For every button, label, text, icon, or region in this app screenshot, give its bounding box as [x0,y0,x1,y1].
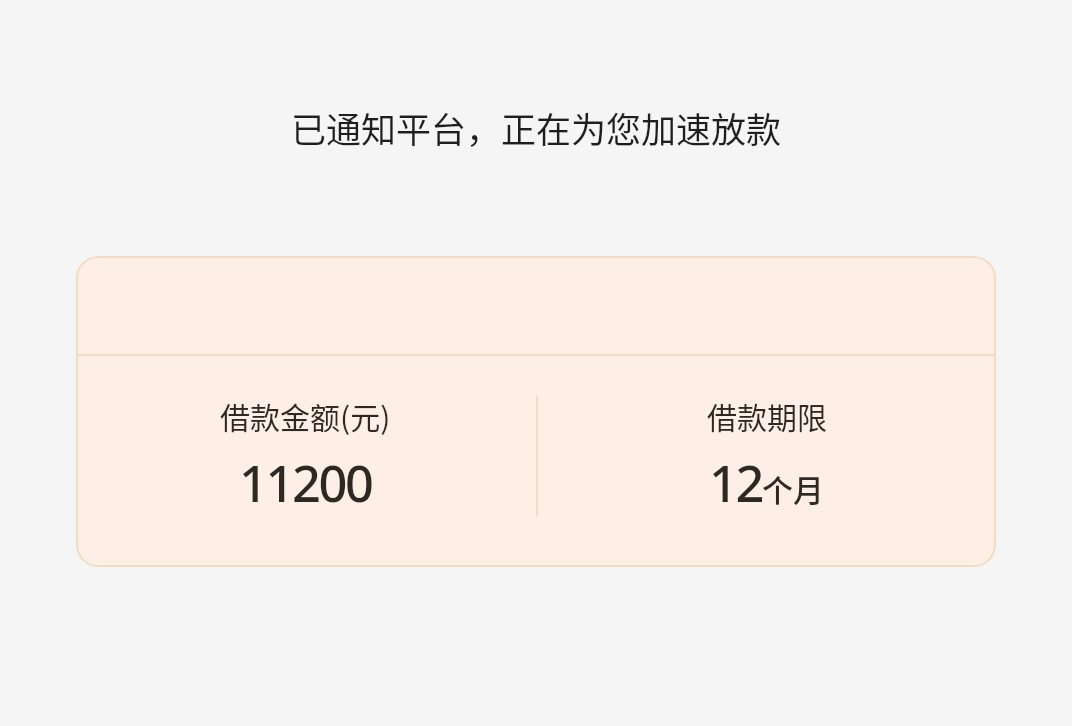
staticText: 12个月 [709,448,824,517]
button[interactable]: 借款金额(元) [76,350,535,561]
button[interactable]: 借款期限 [537,350,996,561]
staticText: 借款金额(元) [220,394,391,437]
staticText: 借款期限 [707,394,827,437]
button[interactable]: 借款信息卡片 [76,256,996,567]
staticText: 11200 [239,448,372,517]
staticText: 已通知平台，正在为您加速放款 [0,102,1072,153]
